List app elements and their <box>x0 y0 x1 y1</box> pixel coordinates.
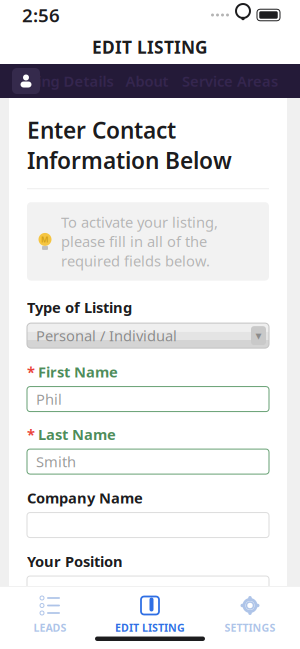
button[interactable]: LEADS <box>0 586 100 635</box>
staticText: SETTINGS <box>224 620 275 635</box>
staticText: LEADS <box>33 620 66 635</box>
staticText: EDIT LISTING <box>92 35 208 58</box>
button[interactable]: SETTINGS <box>200 586 300 635</box>
staticText: * <box>27 425 35 444</box>
staticText: Phil <box>36 389 62 409</box>
button[interactable]: Service Areas <box>180 64 280 98</box>
staticText: About <box>125 71 168 91</box>
staticText: Type of Listing <box>27 298 132 317</box>
staticText: M <box>41 234 49 245</box>
button[interactable]: Approved Instructor <box>27 640 269 649</box>
button[interactable]: Profile <box>12 64 40 98</box>
staticText: Service Areas <box>182 71 278 91</box>
staticText: * <box>27 362 35 382</box>
staticText: Top Category <box>38 615 133 634</box>
staticText: To activate your listing, please fill in… <box>61 212 218 271</box>
staticText: * <box>27 615 35 634</box>
button[interactable]: About <box>114 64 180 98</box>
button[interactable]: Personal / Individual <box>27 323 269 348</box>
button[interactable]: Listing Details <box>12 64 114 98</box>
button[interactable]: EDIT LISTING <box>100 586 200 635</box>
staticText: First Name <box>38 362 118 382</box>
staticText: Last Name <box>38 425 116 444</box>
staticText: Listing Details <box>12 71 113 91</box>
staticText: Your Position <box>27 551 123 571</box>
staticText: 2:56 <box>22 3 60 27</box>
staticText: Enter Contact Information Below <box>27 115 232 175</box>
staticText: EDIT LISTING <box>115 620 185 635</box>
staticText: Company Name <box>27 488 143 508</box>
staticText: Smith <box>36 452 76 471</box>
staticText: Personal / Individual <box>36 326 177 345</box>
staticText: ▾ <box>255 329 261 342</box>
